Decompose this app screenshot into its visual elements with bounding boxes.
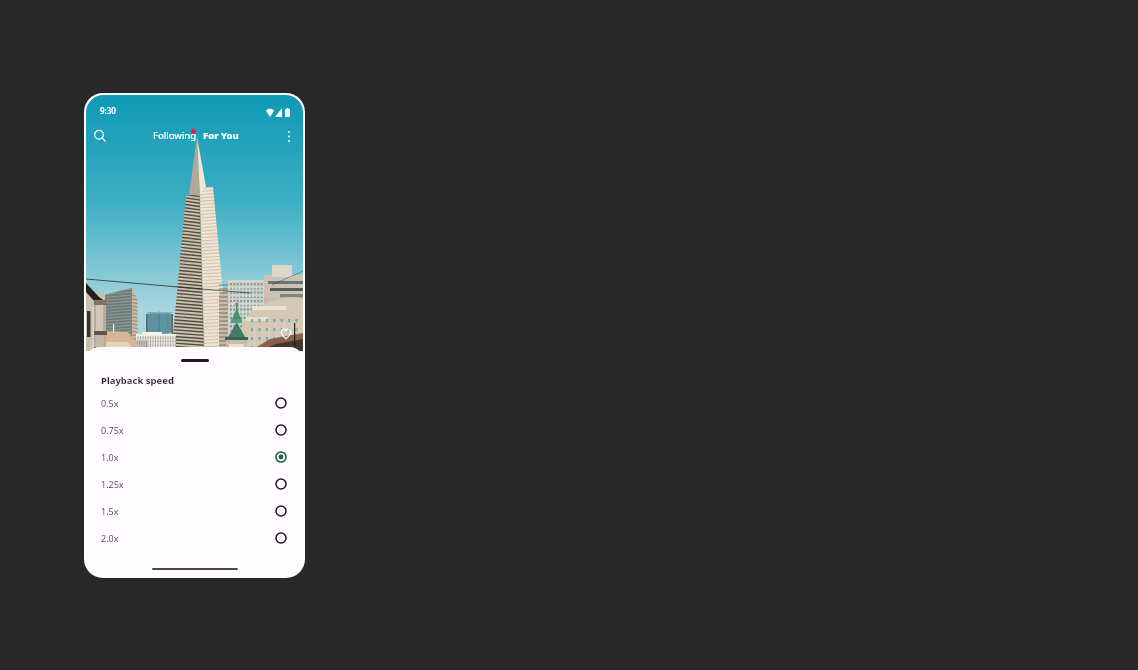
staticText: Following: [153, 129, 197, 142]
staticText: 0.5x: [101, 397, 119, 409]
staticText: 9:30: [100, 105, 116, 116]
staticText: 1.5x: [101, 505, 119, 517]
staticText: 0.75x: [101, 424, 124, 436]
button[interactable]: 0.5x: [86, 389, 303, 416]
staticText: 2.0x: [101, 532, 119, 544]
button[interactable]: Search: [89, 125, 111, 147]
button[interactable]: More options: [279, 126, 299, 146]
button[interactable]: 1.5x: [86, 497, 303, 524]
button[interactable]: Following: [153, 129, 197, 142]
staticText: For You: [203, 129, 239, 142]
button[interactable]: Like: [278, 325, 294, 341]
button[interactable]: 1.0x: [86, 443, 303, 470]
staticText: 1.0x: [101, 451, 119, 463]
button[interactable]: 0.75x: [86, 416, 303, 443]
button[interactable]: For You: [203, 129, 239, 142]
button[interactable]: 1.25x: [86, 470, 303, 497]
staticText: 1.25x: [101, 478, 124, 490]
staticText: Playback speed: [101, 374, 174, 387]
button[interactable]: 2.0x: [86, 524, 303, 551]
